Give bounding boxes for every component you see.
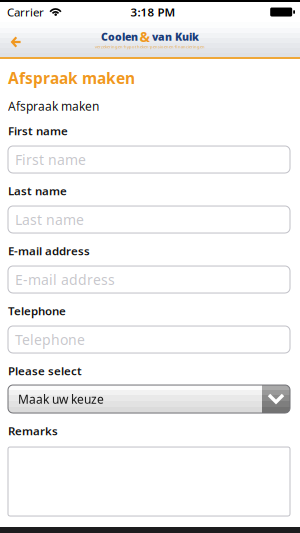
staticText: verzekeringen·hypotheken·pensioenen·fina… (95, 44, 205, 49)
staticText: Last name (8, 183, 67, 199)
button[interactable]: Last name (8, 206, 290, 233)
button[interactable]: Telephone (8, 326, 290, 353)
staticText: Last name (15, 210, 84, 229)
button[interactable]: Maak uw keuze (8, 385, 290, 413)
staticText: First name (15, 150, 86, 169)
staticText: Afspraak maken (8, 98, 99, 114)
staticText: Afspraak maken (8, 67, 135, 88)
button[interactable]: First name (8, 146, 290, 173)
staticText: Telephone (15, 330, 85, 349)
button[interactable]: Back (0, 23, 22, 56)
staticText: First name (8, 123, 68, 139)
staticText: Maak uw keuze (18, 391, 104, 407)
staticText: E-mail address (8, 243, 90, 259)
button[interactable]: Remarks (8, 447, 290, 516)
staticText: 3:18 PM (130, 4, 175, 20)
staticText: & (139, 27, 150, 46)
staticText: Carrier (7, 4, 44, 20)
staticText: Telephone (8, 303, 66, 319)
staticText: Coolen (101, 29, 138, 44)
staticText: van Kuik (152, 29, 199, 44)
staticText: E-mail address (15, 270, 115, 289)
staticText: Please select (8, 363, 82, 379)
staticText: Remarks (8, 423, 58, 439)
button[interactable]: E-mail address (8, 266, 290, 293)
